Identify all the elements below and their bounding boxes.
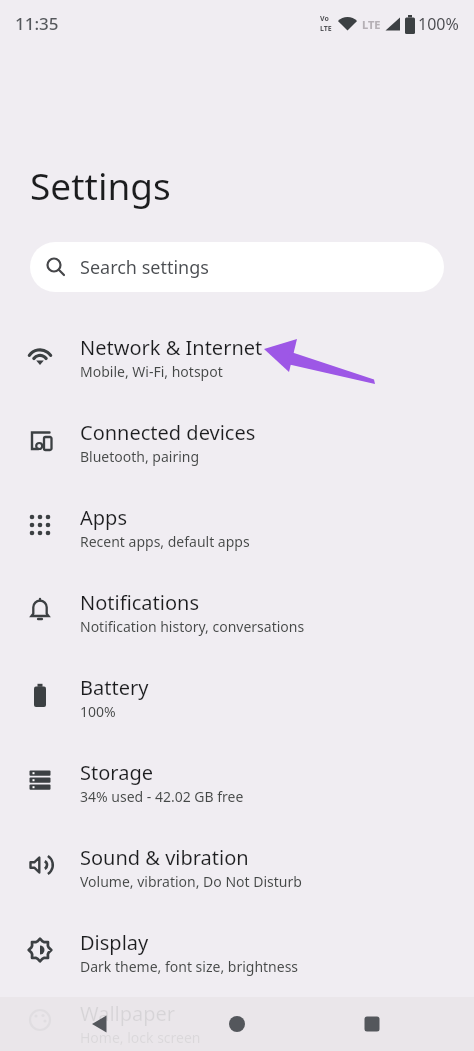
button[interactable]: Notifications	[0, 570, 474, 655]
staticText: Home, lock screen	[80, 1028, 201, 1047]
staticText: 100%	[80, 702, 116, 721]
staticText: 11:35	[15, 12, 59, 35]
staticText: Bluetooth, pairing	[80, 447, 200, 466]
staticText: Network & Internet	[80, 334, 263, 361]
staticText: Volume, vibration, Do Not Disturb	[80, 872, 302, 891]
staticText: Display	[80, 929, 149, 956]
button[interactable]: Search settings	[30, 242, 444, 292]
staticText: Settings	[30, 160, 171, 210]
staticText: Wallpaper	[80, 1000, 176, 1027]
staticText: Recent apps, default apps	[80, 532, 250, 551]
staticText: Storage	[80, 759, 153, 786]
button[interactable]: Network & Internet	[0, 315, 474, 400]
button[interactable]	[91, 1015, 109, 1033]
staticText: Apps	[80, 504, 127, 531]
button[interactable]: Battery	[0, 655, 474, 740]
button[interactable]: Wallpaper	[0, 995, 474, 1051]
staticText: Dark theme, font size, brightness	[80, 957, 299, 976]
button[interactable]: Storage	[0, 740, 474, 825]
button[interactable]	[228, 1015, 246, 1033]
staticText: Mobile, Wi-Fi, hotspot	[80, 362, 223, 381]
button[interactable]: Apps	[0, 485, 474, 570]
button[interactable]: Sound & vibration	[0, 825, 474, 910]
staticText: 100%	[418, 13, 459, 35]
button[interactable]: Display	[0, 910, 474, 995]
staticText: Notification history, conversations	[80, 617, 305, 636]
staticText: LTE	[362, 17, 381, 32]
button[interactable]: Connected devices	[0, 400, 474, 485]
staticText: Sound & vibration	[80, 844, 249, 871]
button[interactable]	[363, 1015, 381, 1033]
staticText: Notifications	[80, 589, 199, 616]
staticText: Battery	[80, 674, 149, 701]
staticText: Vo	[320, 14, 329, 24]
staticText: LTE	[320, 24, 332, 34]
staticText: Connected devices	[80, 419, 256, 446]
staticText: 34% used - 42.02 GB free	[80, 787, 244, 806]
staticText: Search settings	[80, 255, 209, 280]
